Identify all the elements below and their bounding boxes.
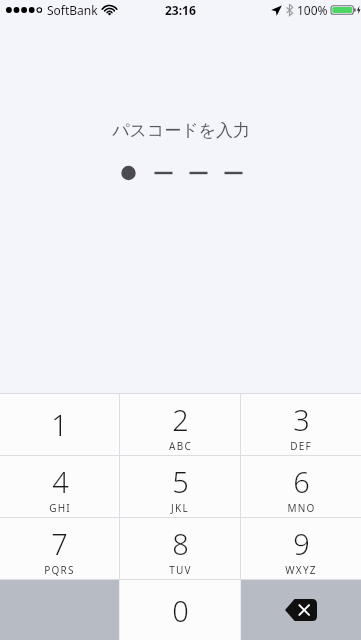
staticText: 7 xyxy=(51,524,68,563)
staticText: 23:16 xyxy=(165,2,196,18)
staticText: GHI xyxy=(49,501,71,515)
staticText: MNO xyxy=(287,501,316,515)
staticText: 0 xyxy=(172,591,189,630)
button[interactable]: 0 xyxy=(120,580,240,640)
staticText: ABC xyxy=(169,439,192,453)
staticText: WXYZ xyxy=(285,563,317,577)
staticText: 9 xyxy=(293,524,310,563)
staticText: 3 xyxy=(293,400,310,439)
button[interactable]: 4 xyxy=(0,456,119,517)
staticText: DEF xyxy=(290,439,312,453)
button[interactable]: 5 xyxy=(120,456,240,517)
staticText: パスコードを入力 xyxy=(112,120,250,141)
staticText: 2 xyxy=(172,400,189,439)
staticText: 5 xyxy=(172,462,189,501)
button[interactable]: 6 xyxy=(241,456,361,517)
staticText: TUV xyxy=(169,563,192,577)
button[interactable]: 9 xyxy=(241,518,361,579)
staticText: JKL xyxy=(171,501,189,515)
staticText: 1 xyxy=(51,405,68,444)
staticText: SoftBank xyxy=(47,2,98,18)
button[interactable]: 3 xyxy=(241,394,361,455)
button[interactable]: 8 xyxy=(120,518,240,579)
staticText: 6 xyxy=(293,462,310,501)
button[interactable]: 2 xyxy=(120,394,240,455)
staticText: 100% xyxy=(297,2,328,18)
button[interactable]: 7 xyxy=(0,518,119,579)
staticText: PQRS xyxy=(44,563,75,577)
staticText: 8 xyxy=(172,524,189,563)
button[interactable]: 1 xyxy=(0,394,119,455)
button[interactable]: Delete xyxy=(241,580,361,640)
staticText: 4 xyxy=(52,462,69,501)
